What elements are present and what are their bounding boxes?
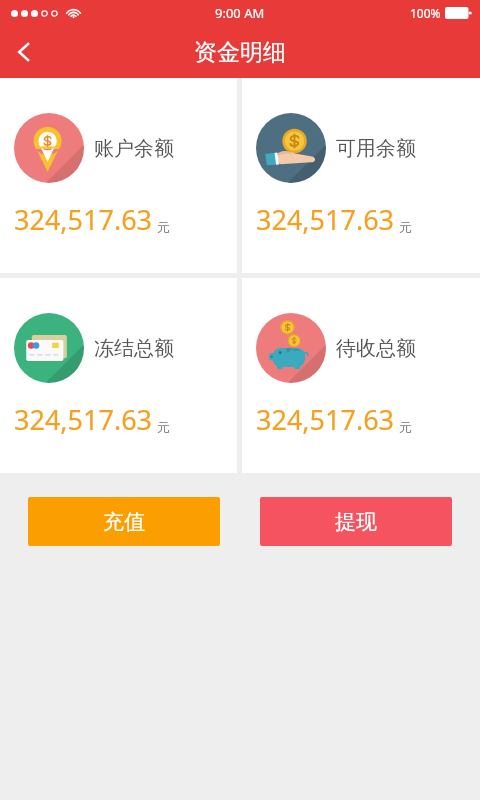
staticText: 元 xyxy=(157,419,170,435)
staticText: 充值 xyxy=(103,509,145,535)
staticText: 324,517.63 xyxy=(14,401,153,438)
staticText: 元 xyxy=(157,219,170,235)
staticText: 100% xyxy=(410,5,441,21)
staticText: 可用余额 xyxy=(336,136,416,161)
staticText: 324,517.63 xyxy=(14,201,153,238)
staticText: 324,517.63 xyxy=(256,201,395,238)
staticText: 账户余额 xyxy=(94,136,174,161)
staticText: 元 xyxy=(399,219,412,235)
staticText: 冻结总额 xyxy=(94,336,174,361)
button[interactable]: 待收总额 xyxy=(242,278,480,473)
button[interactable]: 账户余额 xyxy=(0,78,237,273)
staticText: 324,517.63 xyxy=(256,401,395,438)
button[interactable]: Back xyxy=(0,28,48,76)
button[interactable]: 提现 xyxy=(260,497,452,546)
staticText: 提现 xyxy=(335,509,377,535)
button[interactable]: 充值 xyxy=(28,497,220,546)
button[interactable]: 可用余额 xyxy=(242,78,480,273)
staticText: 资金明细 xyxy=(194,38,286,67)
button[interactable]: 冻结总额 xyxy=(0,278,237,473)
staticText: 9:00 AM xyxy=(215,4,265,22)
staticText: 待收总额 xyxy=(336,336,416,361)
staticText: 元 xyxy=(399,419,412,435)
